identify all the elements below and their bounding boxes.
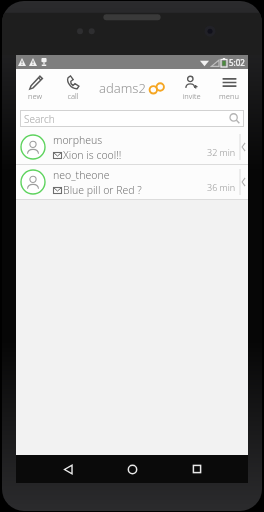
- button[interactable]: neo_theone: [16, 165, 248, 199]
- staticText: menu: [219, 91, 239, 101]
- staticText: Xion is cool!!: [63, 148, 122, 162]
- button[interactable]: invite: [176, 74, 206, 102]
- staticText: adams2: [99, 79, 146, 97]
- button[interactable]: menu: [214, 74, 244, 102]
- staticText: neo_theone: [53, 168, 110, 182]
- button[interactable]: new: [20, 74, 50, 102]
- staticText: Search: [24, 112, 55, 126]
- staticText: Blue pill or Red ?: [63, 183, 142, 197]
- staticText: 36 min: [207, 181, 236, 193]
- button[interactable]: Back: [55, 456, 81, 482]
- staticText: invite: [182, 91, 201, 101]
- staticText: 32 min: [207, 146, 236, 158]
- button[interactable]: call: [58, 74, 88, 102]
- staticText: new: [28, 91, 42, 101]
- button[interactable]: Search: [20, 110, 244, 127]
- staticText: call: [67, 91, 79, 101]
- button[interactable]: Home: [119, 456, 145, 482]
- button[interactable]: morpheus: [16, 130, 248, 164]
- button[interactable]: Recent apps: [184, 456, 210, 482]
- staticText: 5:02: [229, 57, 245, 68]
- staticText: morpheus: [53, 133, 103, 147]
